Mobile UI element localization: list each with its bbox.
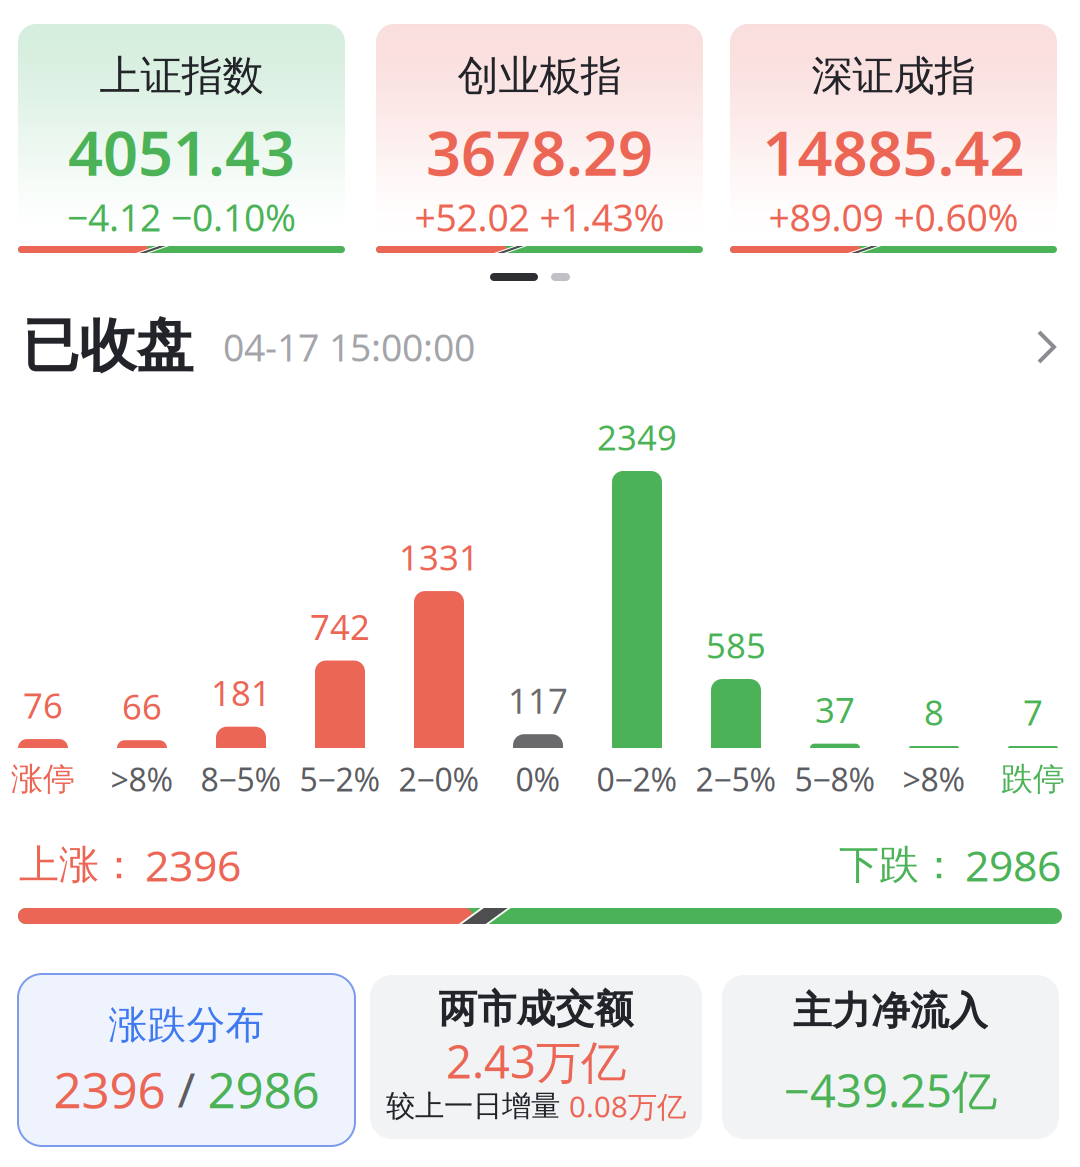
staticText: 0−2% [596,758,677,800]
staticText: 2349 [597,414,677,460]
staticText: 8 [924,689,944,735]
staticText: 较上一日增量 [386,1088,560,1124]
staticText: 181 [211,670,271,716]
staticText: 上证指数 [99,51,263,101]
button[interactable]: 已收盘 [18,311,1062,383]
staticText: 66 [122,683,162,729]
staticText: / [177,1057,195,1121]
staticText: >8% [110,758,173,800]
staticText: 2−0% [398,758,479,800]
staticText: 117 [508,677,568,723]
staticText: 04-17 15:00:00 [223,322,475,372]
staticText: 742 [310,603,370,649]
button[interactable]: 主力净流入 [722,975,1059,1139]
staticText: 5−2% [299,758,380,800]
staticText: 2986 [965,837,1061,893]
button[interactable]: 深证成指 [730,24,1057,255]
staticText: 创业板指 [457,51,621,101]
staticText: 8−5% [200,758,281,800]
staticText: 0% [515,758,560,800]
staticText: 0.08万亿 [569,1086,686,1125]
staticText: 主力净流入 [793,987,988,1035]
staticText: >8% [902,758,965,800]
staticText: −439.25亿 [784,1060,997,1120]
staticText: 深证成指 [811,51,975,101]
button[interactable]: 创业板指 [376,24,703,255]
staticText: 2−5% [695,758,776,800]
staticText: 下跌： [839,840,959,889]
staticText: 14885.42 [762,111,1024,193]
staticText: 2986 [207,1056,319,1122]
button[interactable]: 两市成交额 [370,975,702,1139]
staticText: 涨停 [11,759,75,799]
staticText: 76 [23,682,63,728]
staticText: 2396 [145,837,241,893]
staticText: 涨跌分布 [108,1001,264,1049]
staticText: 5−8% [794,758,875,800]
staticText: 1331 [399,534,479,580]
staticText: +89.09 +0.60% [768,192,1018,242]
staticText: 已收盘 [22,311,193,381]
button[interactable]: 上证指数 [18,24,345,255]
staticText: 3678.29 [426,111,653,193]
staticText: 2396 [53,1056,165,1122]
staticText: 上涨： [19,840,139,889]
staticText: 两市成交额 [438,985,633,1033]
staticText: 7 [1023,689,1043,735]
staticText: 2.43万亿 [446,1031,626,1091]
staticText: 585 [706,622,766,668]
staticText: 4051.43 [68,111,295,193]
staticText: 37 [815,687,855,733]
staticText: 跌停 [1001,759,1065,799]
button[interactable]: 涨跌分布 [18,974,355,1146]
staticText: −4.12 −0.10% [67,192,296,242]
staticText: +52.02 +1.43% [414,192,664,242]
